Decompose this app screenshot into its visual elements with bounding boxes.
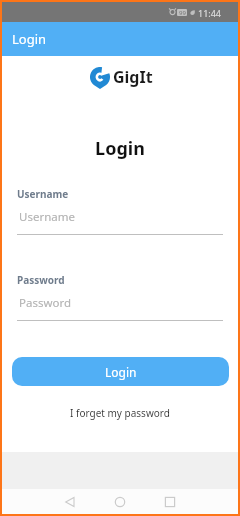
button[interactable]: Login (12, 357, 229, 386)
staticText: 11:44 (198, 7, 222, 19)
button[interactable]: Back (65, 497, 75, 507)
button[interactable]: I forget my password (2, 406, 238, 420)
staticText: 99 (179, 9, 186, 16)
staticText: Username (19, 209, 75, 225)
staticText: Username (17, 187, 69, 201)
staticText: Password (19, 295, 72, 311)
staticText: Login (2, 136, 238, 161)
staticText: Login (105, 364, 137, 380)
staticText: Password (17, 273, 65, 287)
staticText: GigIt (113, 66, 153, 88)
button[interactable]: Recent apps (165, 497, 175, 507)
staticText: I forget my password (70, 406, 170, 420)
button[interactable]: Home (115, 497, 125, 507)
staticText: Login (12, 30, 47, 48)
